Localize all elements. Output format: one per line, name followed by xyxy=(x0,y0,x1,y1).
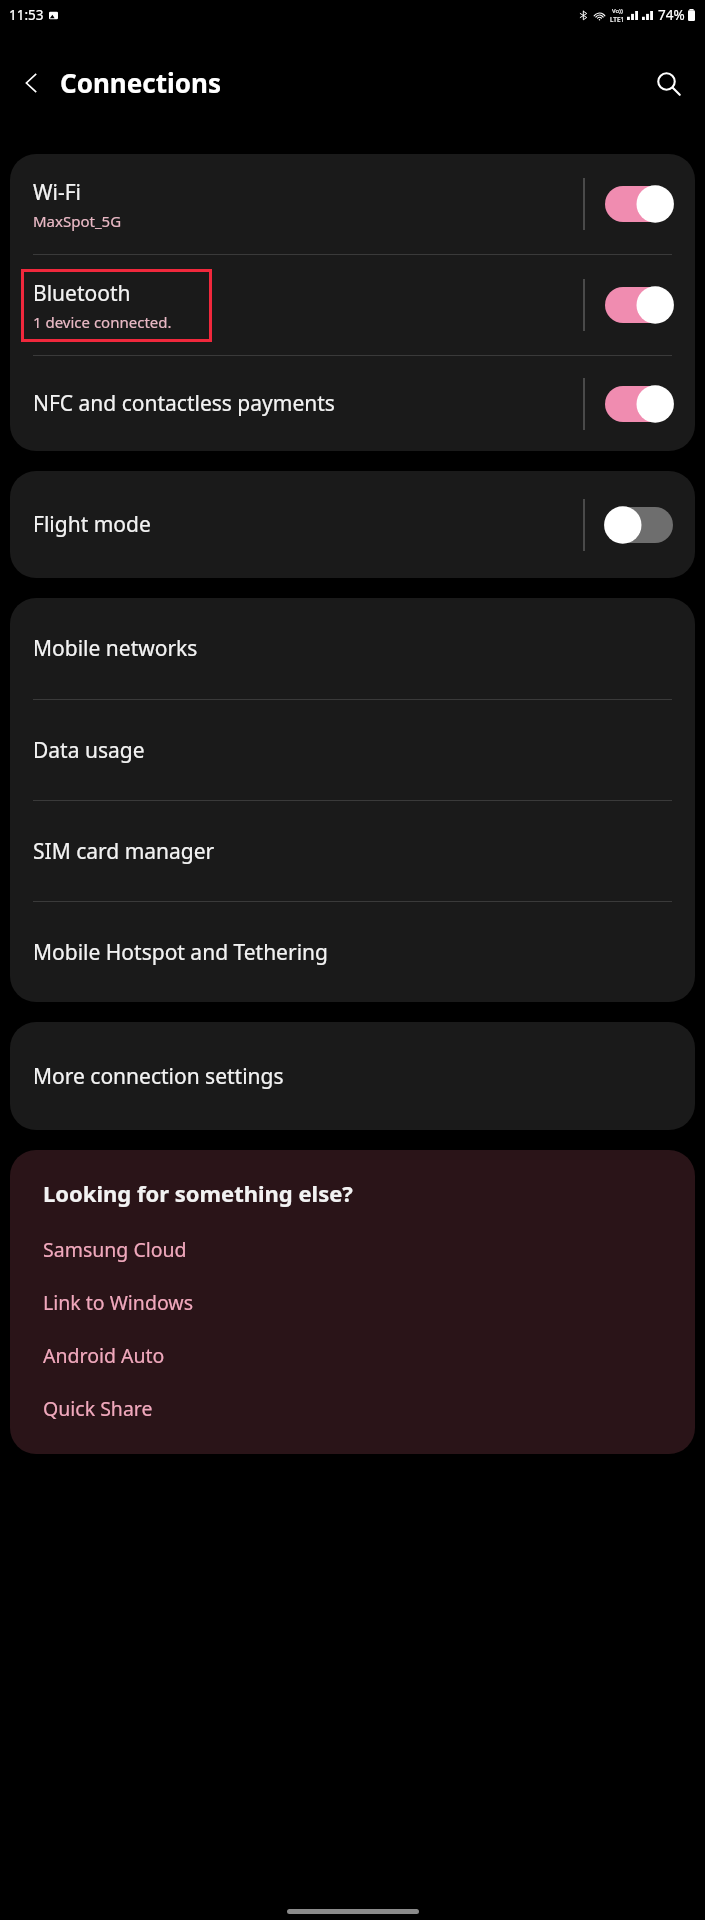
staticText: Quick Share xyxy=(43,1395,153,1422)
staticText: Bluetooth xyxy=(33,279,131,308)
staticText: LTE1 xyxy=(610,15,625,24)
staticText: Android Auto xyxy=(43,1342,165,1369)
button[interactable]: Mobile Hotspot and Tethering xyxy=(10,902,695,1002)
staticText: 11:53 xyxy=(9,6,44,24)
staticText: MaxSpot_5G xyxy=(33,211,122,231)
button[interactable]: Wi-Fi xyxy=(10,154,695,254)
button[interactable]: Flight mode xyxy=(10,471,695,578)
button[interactable]: Bluetooth xyxy=(10,255,695,355)
staticText: Looking for something else? xyxy=(43,1178,353,1208)
button[interactable]: Back xyxy=(6,57,58,109)
button[interactable]: Search xyxy=(641,56,695,110)
button[interactable]: SIM card manager xyxy=(10,801,695,901)
button[interactable]: More connection settings xyxy=(10,1022,695,1130)
staticText: Samsung Cloud xyxy=(43,1236,187,1263)
button[interactable]: Quick Share xyxy=(10,1393,695,1424)
button[interactable]: Wi-Fi toggle xyxy=(603,184,675,224)
staticText: Vo)) xyxy=(612,7,623,15)
button[interactable]: Data usage xyxy=(10,700,695,800)
staticText: Mobile Hotspot and Tethering xyxy=(33,938,328,967)
staticText: 74% xyxy=(658,6,685,24)
staticText: SIM card manager xyxy=(33,837,215,866)
staticText: NFC and contactless payments xyxy=(33,389,335,418)
staticText: 1 device connected. xyxy=(33,312,172,332)
button[interactable]: Flight mode toggle xyxy=(603,505,675,545)
button[interactable]: Mobile networks xyxy=(10,598,695,699)
button[interactable]: Bluetooth toggle xyxy=(603,285,675,325)
button[interactable]: Link to Windows xyxy=(10,1287,695,1318)
staticText: Link to Windows xyxy=(43,1289,193,1316)
staticText: Mobile networks xyxy=(33,634,198,663)
staticText: Data usage xyxy=(33,736,145,765)
button[interactable]: NFC and contactless payments xyxy=(10,356,695,451)
staticText: Connections xyxy=(60,65,221,100)
button[interactable]: NFC and contactless payments toggle xyxy=(603,384,675,424)
button[interactable]: Samsung Cloud xyxy=(10,1234,695,1265)
staticText: Flight mode xyxy=(33,510,151,539)
staticText: More connection settings xyxy=(33,1062,284,1091)
button[interactable]: Android Auto xyxy=(10,1340,695,1371)
staticText: Wi-Fi xyxy=(33,178,82,207)
